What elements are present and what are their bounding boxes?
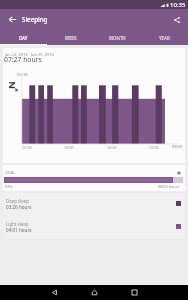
staticText: DAY: [19, 35, 28, 41]
button[interactable]: MONTH: [94, 30, 141, 45]
staticText: 08:05: [172, 144, 183, 150]
button[interactable]: DAY: [0, 30, 47, 45]
staticText: 08:00 hours: [158, 184, 180, 189]
staticText: WEEK: [65, 35, 77, 41]
button[interactable]: Home: [88, 285, 100, 300]
staticText: 93%: [5, 184, 13, 189]
staticText: 00:38: [17, 72, 28, 78]
staticText: Sleeping: [22, 15, 48, 23]
button[interactable]: Light sleep: [3, 216, 185, 239]
staticText: Jan 24, 2016 - Jan 25, 2016: [5, 52, 54, 57]
button[interactable]: Share: [170, 13, 183, 26]
staticText: 05:00: [107, 145, 117, 150]
staticText: YEAR: [159, 35, 170, 41]
staticText: 03:26 hours: [6, 204, 32, 210]
button[interactable]: Back: [48, 285, 60, 300]
button[interactable]: YEAR: [141, 30, 188, 45]
staticText: MONTH: [109, 35, 126, 41]
button[interactable]: Back: [6, 13, 19, 26]
button[interactable]: WEEK: [47, 30, 94, 45]
button[interactable]: Recents: [128, 285, 140, 300]
button[interactable]: Goal settings: [174, 168, 183, 177]
staticText: 03:00: [64, 145, 74, 150]
button[interactable]: Deep sleep: [3, 193, 185, 216]
staticText: 07:27 hours: [4, 55, 42, 64]
staticText: Deep sleep: [6, 198, 29, 204]
staticText: 10:35: [170, 1, 186, 9]
staticText: 04:01 hours: [6, 227, 32, 233]
staticText: Light sleep: [6, 221, 29, 227]
staticText: 07:00: [149, 145, 159, 150]
staticText: GOAL: [5, 170, 16, 175]
staticText: 01:00: [22, 145, 32, 150]
